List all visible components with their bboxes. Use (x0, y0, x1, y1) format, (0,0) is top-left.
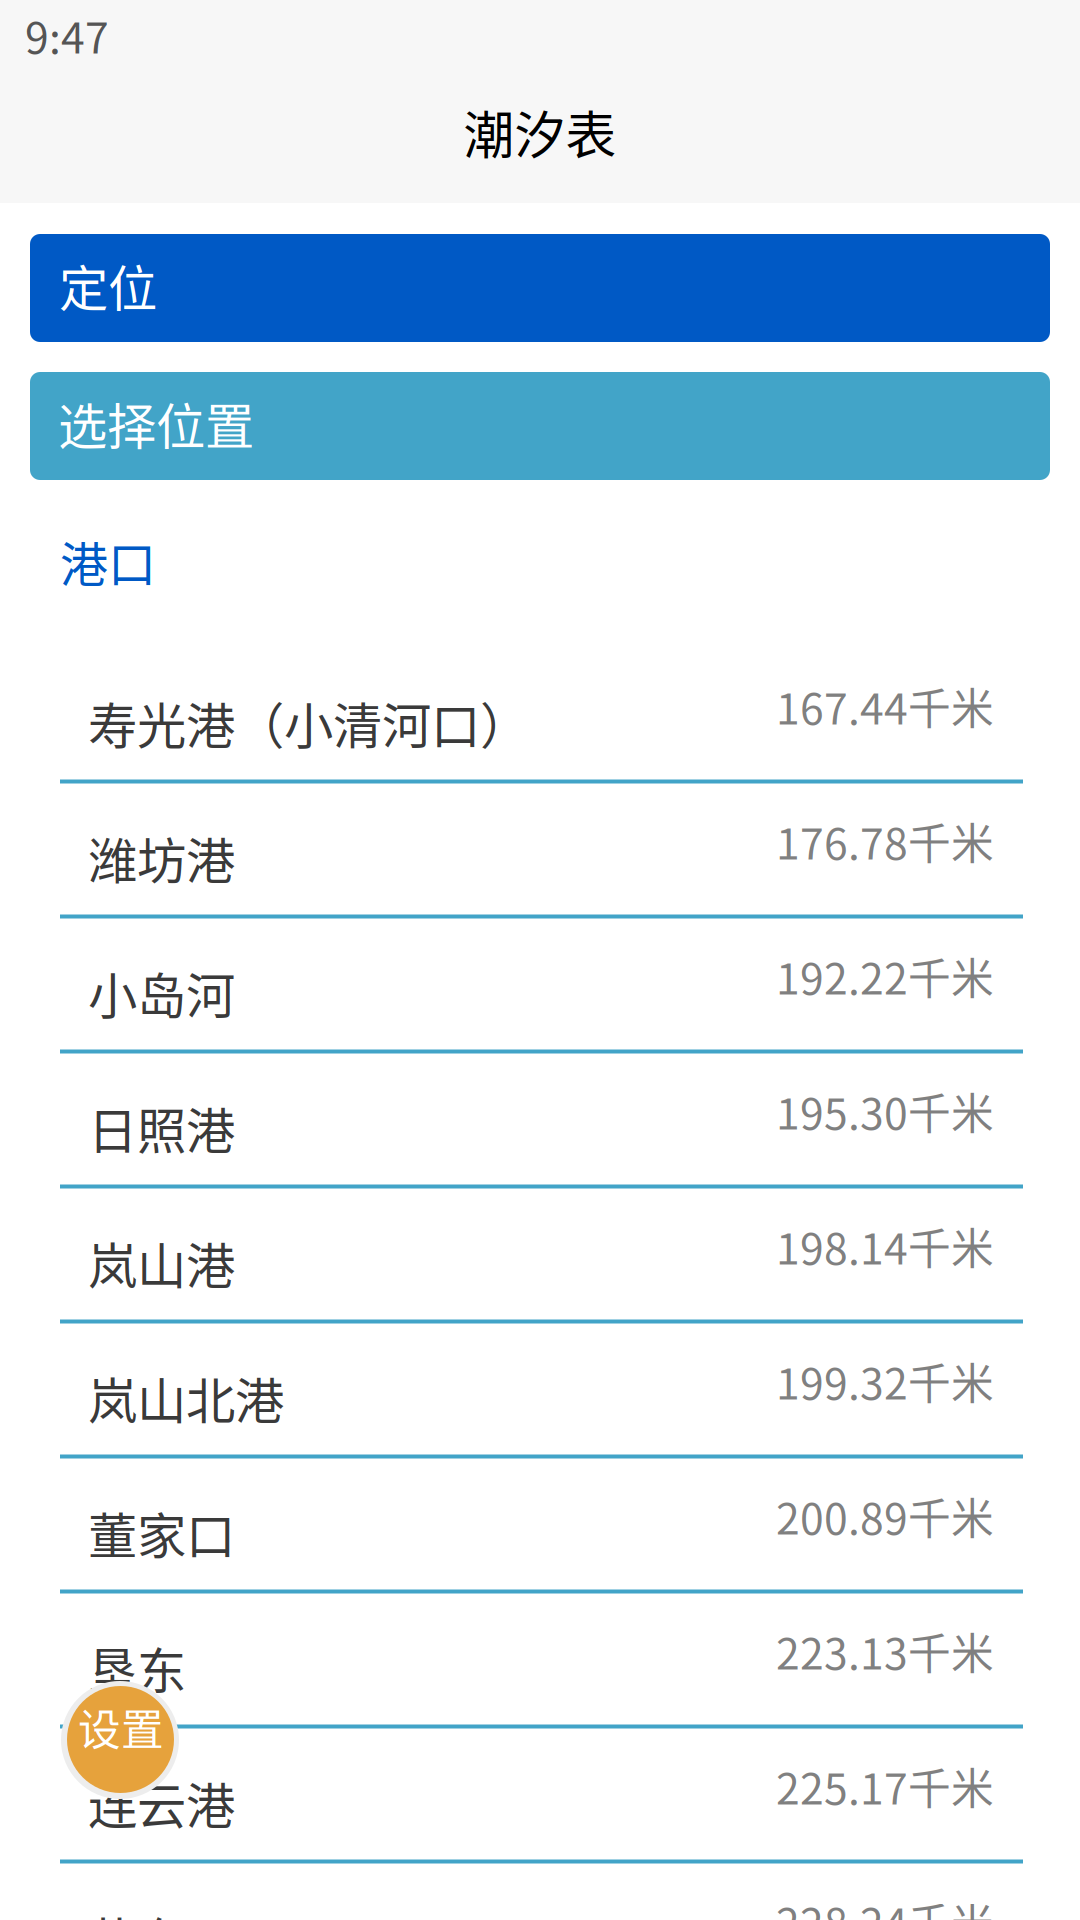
button[interactable]: 连云港 (60, 1728, 1023, 1863)
button[interactable]: 定位 (30, 234, 1050, 342)
staticText: 设置 (78, 1696, 164, 1758)
staticText: 9:47 (25, 4, 109, 66)
button[interactable]: 小岛河 (60, 918, 1023, 1053)
staticText: 岚山北港 (88, 1362, 284, 1433)
button[interactable]: 潍坊港 (60, 783, 1023, 918)
staticText: 港口 (60, 526, 156, 596)
staticText: 195.30千米 (776, 1080, 994, 1142)
button[interactable]: 岚山北港 (60, 1323, 1023, 1458)
staticText: 198.14千米 (776, 1215, 994, 1277)
staticText: 定位 (59, 249, 157, 321)
staticText: 寿光港（小清河口） (88, 687, 529, 758)
staticText: 日照港 (88, 1092, 235, 1163)
button[interactable]: 日照港 (60, 1053, 1023, 1188)
staticText: 潮汐表 (463, 95, 616, 169)
button[interactable]: 岚山港 (60, 1188, 1023, 1323)
staticText: 223.13千米 (776, 1620, 994, 1682)
button[interactable]: 盐东 (60, 1863, 1023, 1920)
staticText: 小岛河 (88, 957, 235, 1028)
staticText: 167.44千米 (776, 675, 994, 737)
staticText: 董家口 (88, 1497, 235, 1568)
button[interactable]: 寿光港（小清河口） (60, 648, 1023, 783)
staticText: 225.17千米 (776, 1755, 994, 1817)
staticText: 潍坊港 (88, 822, 235, 893)
button[interactable]: 董家口 (60, 1458, 1023, 1593)
staticText: 连云港 (88, 1767, 235, 1838)
staticText: 岚山港 (88, 1227, 235, 1298)
staticText: 176.78千米 (776, 810, 994, 872)
staticText: 192.22千米 (776, 945, 994, 1007)
staticText: 200.89千米 (776, 1485, 994, 1547)
button[interactable]: 选择位置 (30, 372, 1050, 480)
staticText: 选择位置 (58, 387, 254, 459)
staticText: 垦东 (88, 1632, 186, 1703)
staticText: 228.24千米 (776, 1890, 994, 1920)
staticText: 盐东 (88, 1902, 186, 1920)
staticText: 199.32千米 (776, 1350, 994, 1412)
button[interactable]: 垦东 (60, 1593, 1023, 1728)
button[interactable]: 设置 (61, 1681, 179, 1799)
